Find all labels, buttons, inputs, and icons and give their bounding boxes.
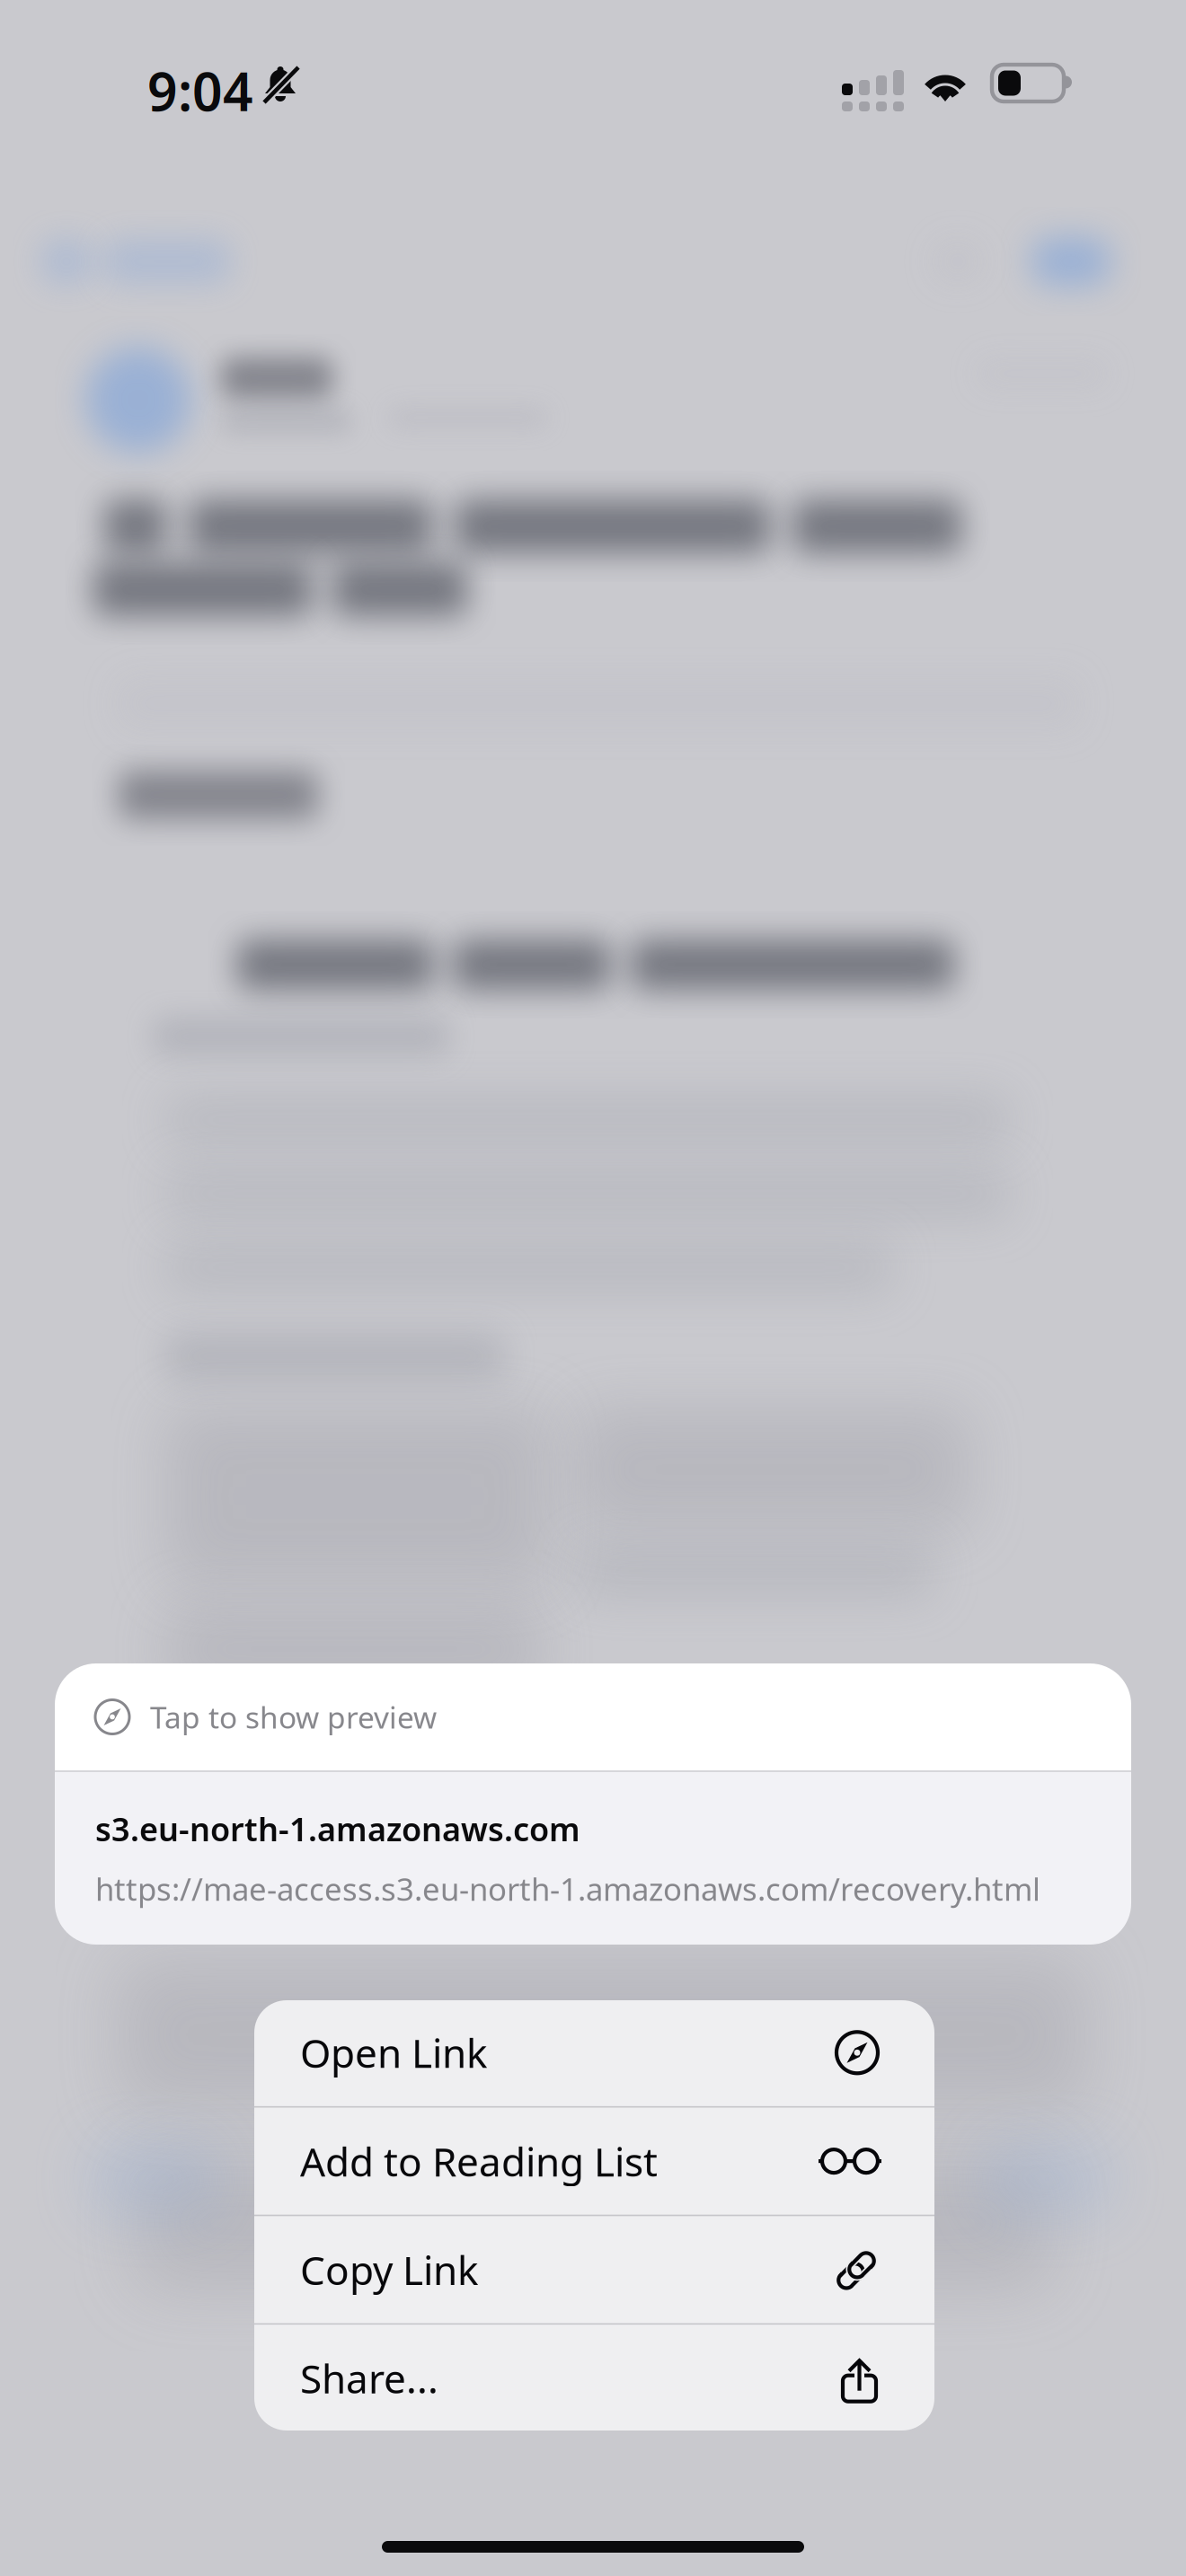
staticText: https://mae-access.s3.eu-north-1.amazona… xyxy=(95,1868,1040,1909)
button[interactable]: Share... xyxy=(254,2325,934,2432)
button[interactable]: Add to Reading List xyxy=(254,2108,934,2215)
staticText: Share... xyxy=(300,2352,438,2404)
button[interactable]: Open Link xyxy=(254,1999,934,2106)
staticText: 9:04 xyxy=(147,56,253,126)
staticText: Open Link xyxy=(300,2026,487,2079)
staticText: Copy Link xyxy=(300,2243,478,2296)
staticText: Tap to show preview xyxy=(150,1697,437,1737)
button[interactable]: Tap to show preview xyxy=(55,1663,1131,1945)
staticText: Add to Reading List xyxy=(300,2135,658,2187)
button[interactable]: Copy Link xyxy=(254,2216,934,2323)
staticText: s3.eu-north-1.amazonaws.com xyxy=(95,1807,580,1850)
